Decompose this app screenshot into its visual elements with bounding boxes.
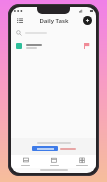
button[interactable]: Tasks [11, 155, 40, 168]
button[interactable]: Calendar [40, 155, 68, 168]
button[interactable]: Add task [83, 16, 92, 25]
button[interactable]: Install [17, 140, 90, 153]
button[interactable] [16, 27, 91, 39]
staticText: Daily Task [39, 17, 69, 25]
button[interactable]: Menu [15, 16, 25, 26]
button[interactable]: Priority flag [83, 42, 91, 50]
button[interactable]: Task Tools [68, 155, 96, 168]
button[interactable]: Install [32, 146, 58, 151]
button[interactable]: Toggle task complete [16, 43, 22, 49]
button[interactable]: Toggle task complete [16, 39, 91, 53]
